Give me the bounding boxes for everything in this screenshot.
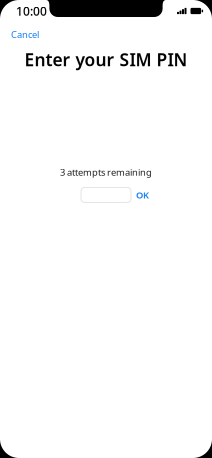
staticText: 3 attempts remaining <box>60 166 152 178</box>
staticText: Enter your SIM PIN <box>24 48 187 71</box>
staticText: OK <box>136 189 149 201</box>
button[interactable]: Cancel <box>0 20 50 42</box>
button[interactable]: OK <box>136 187 149 202</box>
staticText: Cancel <box>11 28 39 41</box>
staticText: 10:00 <box>16 3 47 19</box>
